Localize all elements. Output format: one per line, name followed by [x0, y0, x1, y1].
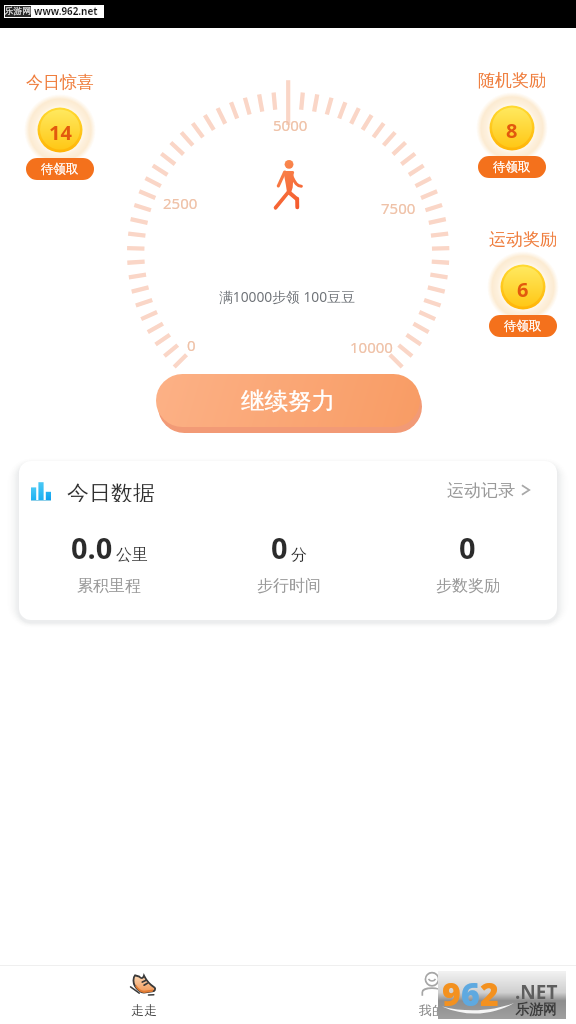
staticText: 运动奖励: [489, 229, 557, 250]
staticText: 我的: [419, 1002, 445, 1018]
other: 走走: [130, 972, 158, 996]
button[interactable]: 今日惊喜: [0, 71, 122, 193]
staticText: 8: [506, 117, 518, 144]
staticText: www.962.net: [34, 5, 98, 18]
other: 我的: [421, 973, 443, 996]
button[interactable]: 运动奖励: [461, 228, 576, 350]
staticText: 2500: [163, 193, 198, 213]
staticText: 待领取: [493, 159, 531, 175]
button[interactable]: 随机奖励: [450, 69, 574, 191]
staticText: .NET: [515, 979, 558, 1005]
staticText: 步数奖励: [436, 576, 500, 596]
staticText: 6: [461, 972, 480, 1016]
staticText: 0: [459, 528, 476, 567]
staticText: 0.0: [71, 528, 113, 567]
staticText: 随机奖励: [478, 70, 546, 91]
staticText: 待领取: [504, 318, 542, 334]
staticText: 继续努力: [241, 386, 335, 416]
staticText: 0: [187, 335, 196, 355]
staticText: 乐游网: [515, 1001, 557, 1019]
staticText: 今日惊喜: [26, 72, 94, 93]
staticText: 公里: [116, 545, 148, 565]
staticText: 7500: [381, 198, 416, 218]
button[interactable]: 运动记录: [447, 479, 530, 501]
staticText: 走走: [131, 1002, 157, 1018]
staticText: 待领取: [41, 161, 79, 177]
staticText: 今日数据: [67, 480, 155, 502]
staticText: 2: [480, 972, 499, 1016]
staticText: 满10000步领 100豆豆: [219, 287, 355, 306]
staticText: 6: [517, 276, 529, 303]
staticText: 累积里程: [77, 576, 141, 596]
staticText: 10000: [350, 337, 393, 357]
staticText: 运动记录: [447, 480, 515, 501]
staticText: 9: [442, 972, 461, 1016]
staticText: 步行时间: [257, 576, 321, 596]
button[interactable]: 我的: [288, 966, 576, 1024]
button[interactable]: 走走: [0, 966, 288, 1024]
staticText: 分: [291, 545, 307, 565]
staticText: 0: [271, 528, 288, 567]
staticText: 5000: [273, 115, 308, 135]
staticText: 14: [49, 119, 72, 146]
button[interactable]: 继续努力: [156, 374, 420, 427]
staticText: 乐游网: [5, 6, 31, 17]
